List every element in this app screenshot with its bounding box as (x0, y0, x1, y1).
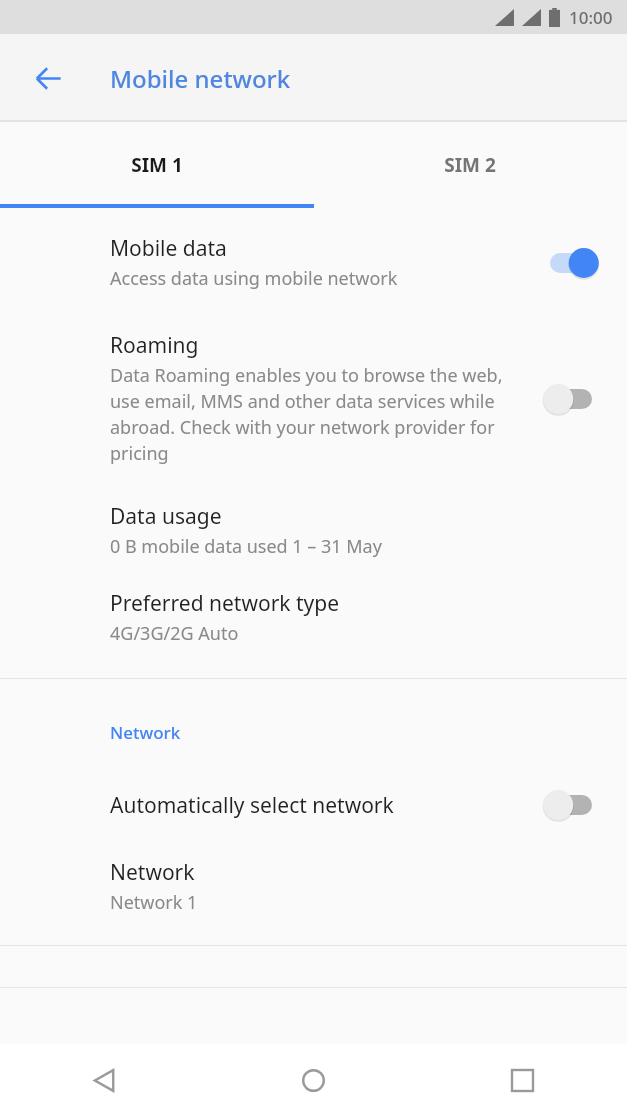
button[interactable]: Recent apps (418, 1044, 627, 1116)
staticText: Automatically select network (110, 791, 394, 820)
staticText: Network (110, 858, 195, 887)
button[interactable]: Network (0, 858, 627, 945)
staticText: 10:00 (569, 6, 613, 29)
staticText: Roaming (110, 331, 199, 360)
staticText: Data usage (110, 502, 222, 531)
button[interactable]: SIM 1 (0, 122, 313, 208)
button[interactable]: Data usage (0, 490, 627, 589)
button[interactable]: Mobile data (537, 240, 605, 286)
staticText: Network 1 (110, 890, 198, 915)
staticText: SIM 2 (444, 152, 496, 178)
staticText: 4G/3G/2G Auto (110, 621, 239, 646)
button[interactable]: Automatically select network (537, 782, 605, 828)
button[interactable]: Back (0, 1044, 209, 1116)
button[interactable]: Roaming (537, 376, 605, 422)
button[interactable]: Home (209, 1044, 418, 1116)
staticText: SIM 1 (131, 152, 183, 178)
staticText: Mobile network (110, 62, 291, 95)
staticText: 0 B mobile data used 1 – 31 May (110, 534, 382, 559)
button[interactable]: Mobile data (0, 208, 627, 321)
staticText: Mobile data (110, 234, 227, 263)
button[interactable]: SIM 2 (313, 122, 627, 208)
staticText: Preferred network type (110, 589, 340, 618)
button[interactable]: Back (22, 52, 74, 104)
staticText: Data Roaming enables you to browse the w… (110, 363, 510, 466)
button[interactable]: Roaming (0, 321, 627, 490)
staticText: Access data using mobile network (110, 266, 398, 291)
button[interactable]: Preferred network type (0, 589, 627, 678)
staticText: Network (110, 721, 181, 744)
button[interactable]: Automatically select network (0, 744, 627, 858)
